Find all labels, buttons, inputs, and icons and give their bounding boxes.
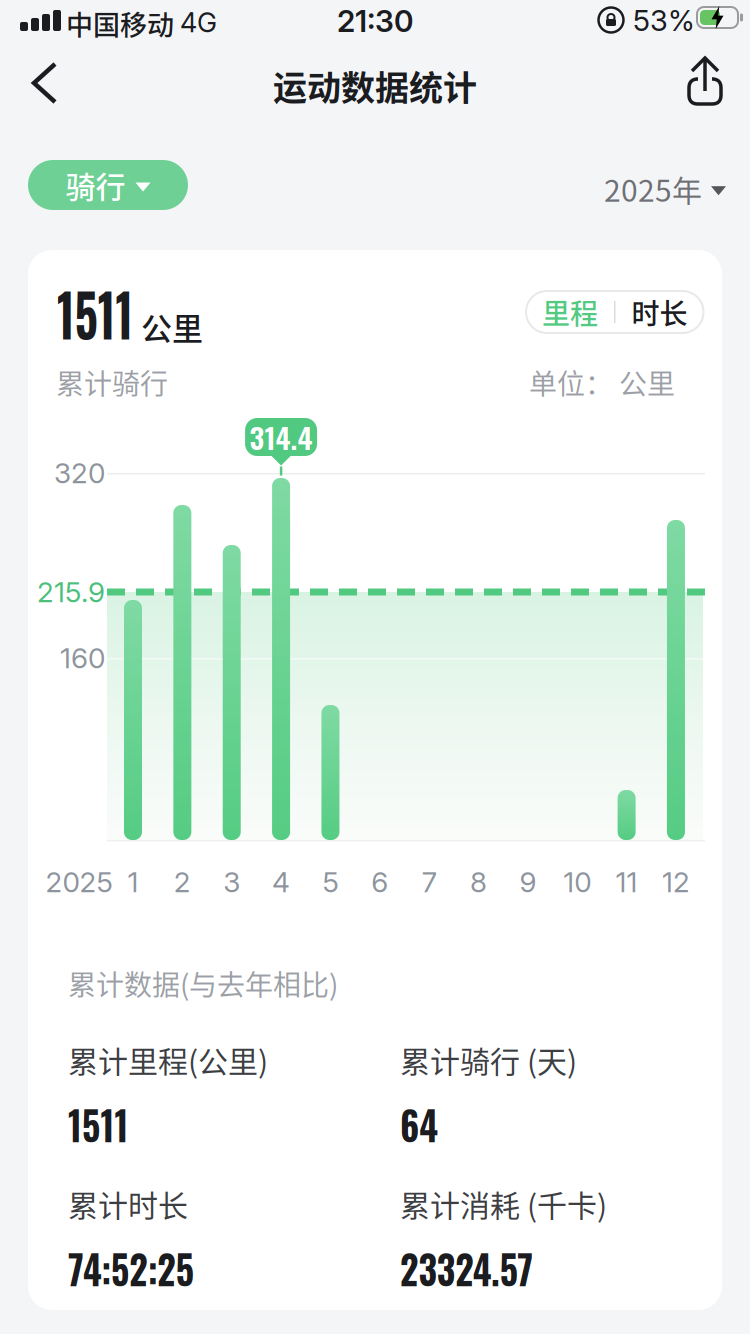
- staticText: 累计骑行: [56, 362, 168, 402]
- staticText: 公里: [141, 304, 203, 349]
- button[interactable]: 2025年: [604, 167, 726, 210]
- staticText: 2: [174, 865, 191, 899]
- staticText: 2025: [45, 865, 112, 899]
- staticText: 1511: [68, 1093, 137, 1154]
- staticText: 单位： 公里: [529, 362, 675, 402]
- staticText: 53%: [633, 3, 695, 38]
- staticText: 23324.57: [400, 1237, 552, 1298]
- staticText: 1: [127, 865, 138, 899]
- staticText: 4G: [180, 6, 217, 39]
- staticText: 中国移动: [66, 4, 174, 43]
- staticText: 1511: [57, 269, 156, 356]
- staticText: 累计骑行 (天): [400, 1038, 577, 1081]
- staticText: 累计数据(与去年相比): [68, 963, 338, 1003]
- staticText: 12: [662, 865, 690, 899]
- staticText: 320: [54, 456, 105, 490]
- staticText: 累计里程(公里): [68, 1038, 268, 1081]
- staticText: 74:52:25: [68, 1237, 212, 1298]
- staticText: 4: [272, 865, 290, 899]
- staticText: 5: [322, 865, 338, 899]
- button[interactable]: 骑行: [28, 160, 188, 210]
- button[interactable]: 里程: [526, 291, 614, 333]
- staticText: 里程: [542, 292, 598, 332]
- staticText: 10: [563, 865, 591, 899]
- staticText: 21:30: [337, 3, 413, 39]
- staticText: 215.9: [37, 575, 105, 609]
- button[interactable]: 时长: [615, 291, 703, 333]
- button[interactable]: Back: [18, 52, 71, 114]
- staticText: 64: [400, 1093, 443, 1154]
- staticText: 累计消耗 (千卡): [400, 1182, 607, 1225]
- staticText: 314.4: [250, 415, 313, 458]
- staticText: 骑行: [65, 163, 125, 207]
- staticText: 时长: [631, 292, 687, 332]
- staticText: 2025年: [604, 167, 702, 210]
- staticText: 7: [422, 865, 437, 899]
- staticText: 累计时长: [68, 1182, 188, 1225]
- staticText: 运动数据统计: [273, 61, 477, 110]
- staticText: 160: [60, 641, 105, 675]
- staticText: 8: [470, 865, 487, 899]
- staticText: 9: [519, 865, 536, 899]
- staticText: 6: [371, 865, 388, 899]
- staticText: 11: [616, 865, 638, 899]
- staticText: 3: [223, 865, 240, 899]
- button[interactable]: Share: [676, 48, 734, 115]
